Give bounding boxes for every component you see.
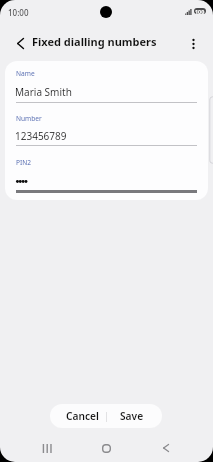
staticText: PIN2 [16, 158, 32, 167]
button[interactable]: Cancel [50, 404, 106, 428]
staticText: Save [120, 409, 144, 423]
button[interactable]: Save [106, 404, 162, 428]
staticText: 123456789 [15, 129, 67, 143]
staticText: 10:00 [8, 7, 29, 18]
button[interactable]: Home [92, 434, 120, 462]
staticText: Fixed dialling numbers [32, 34, 157, 49]
staticText: Name [16, 69, 35, 78]
staticText: Cancel [66, 409, 99, 423]
button[interactable]: Back [152, 434, 180, 462]
staticText: 100 [195, 8, 205, 14]
staticText: Number [16, 114, 42, 123]
button[interactable]: Navigate up [7, 30, 33, 56]
staticText: Maria Smith [15, 85, 72, 99]
button[interactable]: Recent apps [32, 434, 60, 462]
button[interactable]: More options [180, 31, 206, 57]
